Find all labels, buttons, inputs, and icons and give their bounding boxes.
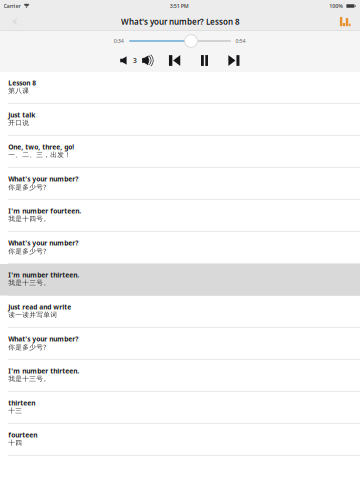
- staticText: What's your number?: [8, 335, 78, 343]
- button[interactable]: I'm number thirteen.: [0, 264, 360, 296]
- button[interactable]: Next track: [226, 53, 242, 67]
- button[interactable]: I'm number fourteen.: [0, 200, 360, 232]
- button[interactable]: I'm number thirteen.: [0, 360, 360, 392]
- button[interactable]: Audio levels: [334, 12, 356, 31]
- staticText: One, two, three, go!: [8, 143, 74, 151]
- button[interactable]: One, two, three, go!: [0, 136, 360, 168]
- staticText: Just read and write: [8, 303, 71, 311]
- button[interactable]: thirteen: [0, 392, 360, 424]
- button[interactable]: Just read and write: [0, 296, 360, 328]
- button[interactable]: Just talk: [0, 104, 360, 136]
- staticText: 开口说: [8, 119, 29, 127]
- staticText: 十三: [8, 407, 22, 415]
- staticText: thirteen: [8, 399, 35, 407]
- staticText: I'm number thirteen.: [8, 367, 79, 375]
- staticText: 你是多少号?: [8, 183, 46, 192]
- button[interactable]: Lesson 8: [0, 72, 360, 104]
- staticText: I'm number fourteen.: [8, 207, 81, 215]
- staticText: I'm number thirteen.: [8, 271, 79, 279]
- button[interactable]: Previous track: [167, 53, 183, 67]
- button[interactable]: Back: [1, 12, 27, 31]
- button[interactable]: Pause: [196, 53, 212, 67]
- staticText: 十四: [8, 439, 22, 447]
- staticText: 100%: [329, 2, 343, 10]
- staticText: Just talk: [8, 111, 35, 119]
- button[interactable]: fourteen: [0, 424, 360, 456]
- staticText: 0:34: [114, 37, 124, 45]
- staticText: 3: [133, 56, 137, 65]
- staticText: 我是十四号。: [8, 215, 50, 223]
- button[interactable]: Volume down: [116, 53, 130, 67]
- staticText: Lesson 8: [8, 79, 36, 87]
- staticText: What's your number?: [8, 175, 78, 183]
- staticText: What's your number?: [8, 239, 78, 247]
- button[interactable]: What's your number?: [0, 168, 360, 200]
- staticText: Carrier: [4, 2, 21, 10]
- staticText: fourteen: [8, 431, 37, 439]
- button[interactable]: What's your number?: [0, 232, 360, 264]
- staticText: 你是多少号?: [8, 343, 46, 352]
- staticText: 你是多少号?: [8, 247, 46, 256]
- staticText: 我是十三号。: [8, 375, 50, 383]
- button[interactable]: What's your number?: [0, 328, 360, 360]
- staticText: 我是十三号。: [8, 279, 50, 287]
- staticText: 一、二、三，出发！: [8, 151, 71, 159]
- staticText: 第八课: [8, 87, 29, 95]
- staticText: 3:51 PM: [170, 2, 189, 10]
- staticText: What's your number? Lesson 8: [121, 16, 240, 27]
- staticText: 读一读并写单词: [8, 311, 57, 319]
- button[interactable]: Volume up: [140, 53, 156, 67]
- staticText: 0:54: [235, 37, 245, 45]
